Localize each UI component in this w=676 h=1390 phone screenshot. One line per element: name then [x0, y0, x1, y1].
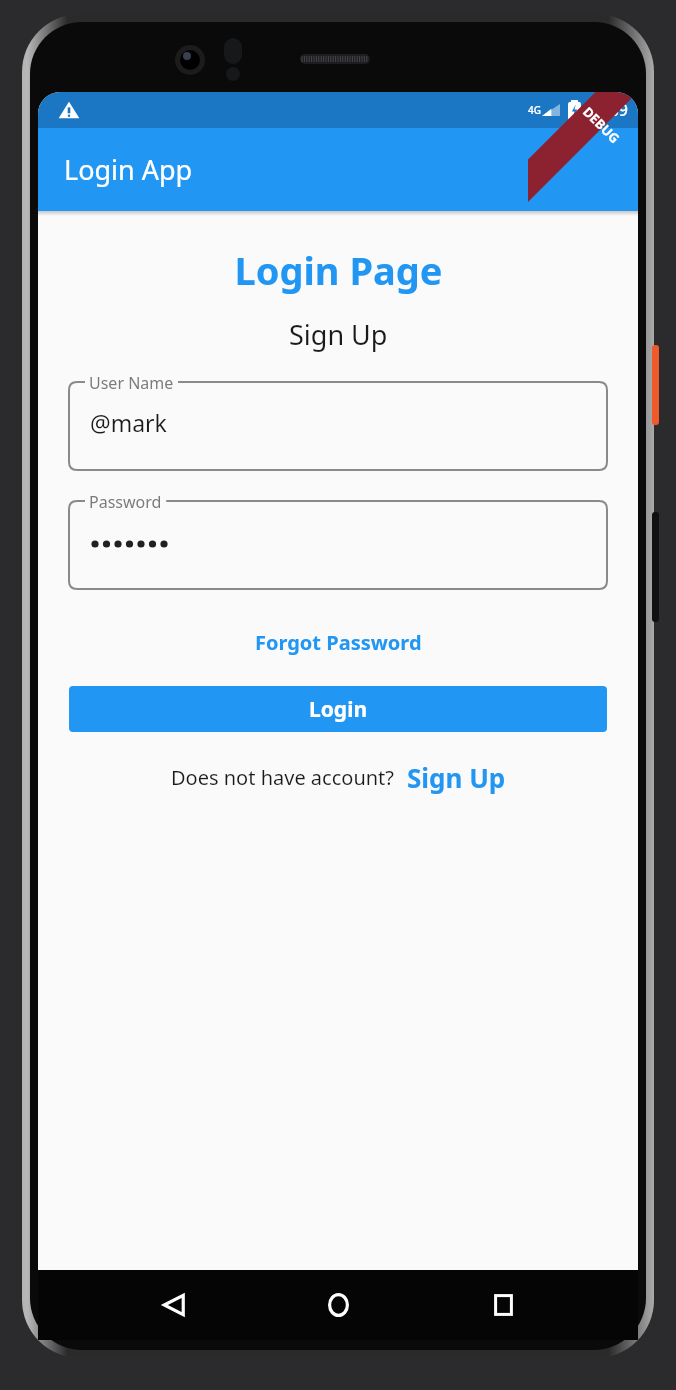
button[interactable]: Home — [309, 1276, 367, 1334]
staticText: Password — [89, 491, 162, 513]
button[interactable]: Recent apps — [474, 1276, 532, 1334]
staticText: DEBUG — [579, 103, 624, 147]
button[interactable]: User Name — [69, 382, 607, 470]
button[interactable]: Password — [69, 501, 607, 589]
button[interactable]: Forgot Password — [245, 625, 432, 660]
staticText: Login — [309, 695, 368, 724]
staticText: Sign Up — [289, 316, 388, 353]
staticText: 12:39 — [587, 99, 628, 121]
staticText: Forgot Password — [255, 629, 422, 656]
staticText: Sign Up — [407, 760, 506, 795]
staticText: Does not have account? — [171, 764, 394, 791]
button[interactable]: Sign Up — [407, 760, 506, 795]
button[interactable]: Login — [69, 686, 607, 732]
staticText: User Name — [89, 372, 174, 394]
staticText: Login Page — [234, 244, 443, 296]
button[interactable]: Back — [145, 1276, 203, 1334]
staticText: @mark — [90, 407, 167, 438]
staticText: Login App — [64, 151, 193, 188]
other: Warning — [58, 99, 80, 121]
staticText: 4G — [528, 103, 541, 117]
